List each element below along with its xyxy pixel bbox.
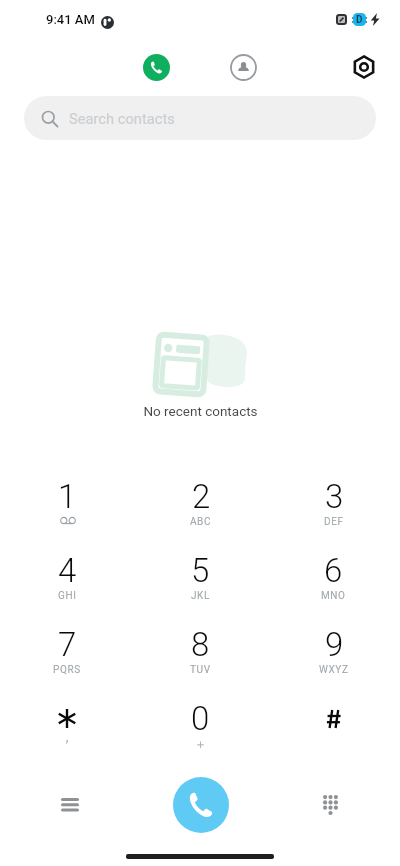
button[interactable]: 3 (267, 477, 400, 551)
button[interactable]: Recents (136, 47, 176, 87)
button[interactable]: 7 (0, 625, 134, 699)
staticText: GHI (58, 590, 77, 602)
staticText: 8 (191, 625, 210, 664)
staticText: 4 (58, 551, 77, 590)
staticText: MNO (321, 590, 346, 602)
button[interactable]: 9 (267, 625, 400, 699)
button[interactable]: 1 (0, 477, 134, 551)
staticText: 9 (325, 625, 344, 664)
button[interactable]: Search contacts (24, 96, 376, 140)
staticText: 5 (191, 551, 210, 590)
staticText: PQRS (53, 664, 81, 676)
staticText: DEF (324, 516, 344, 528)
staticText: Search contacts (69, 110, 175, 127)
button[interactable]: 8 (134, 625, 267, 699)
button[interactable]: 0 (134, 699, 267, 773)
staticText: 6 (324, 551, 343, 590)
button[interactable]: 4 (0, 551, 134, 625)
staticText: TUV (190, 664, 211, 676)
button[interactable]: 5 (134, 551, 267, 625)
staticText: 7 (58, 625, 77, 664)
staticText: No recent contacts (143, 403, 258, 419)
staticText: D (356, 14, 363, 26)
staticText: JKL (191, 590, 210, 602)
button[interactable]: Settings (344, 47, 384, 87)
staticText: ABC (190, 516, 212, 528)
button[interactable]: Contacts (223, 47, 263, 87)
staticText: 1 (58, 477, 77, 516)
button[interactable] (0, 699, 134, 773)
staticText: 2 (192, 477, 211, 516)
staticText: 0 (191, 699, 210, 738)
button[interactable]: Call (173, 777, 229, 833)
button[interactable]: Menu (52, 787, 88, 823)
button[interactable]: Dialpad (312, 787, 348, 823)
staticText: 3 (325, 477, 344, 516)
staticText: 9:41 AM (46, 12, 95, 27)
button[interactable]: 2 (134, 477, 267, 551)
button[interactable] (267, 699, 400, 773)
button[interactable]: 6 (267, 551, 400, 625)
staticText: WXYZ (319, 664, 349, 676)
